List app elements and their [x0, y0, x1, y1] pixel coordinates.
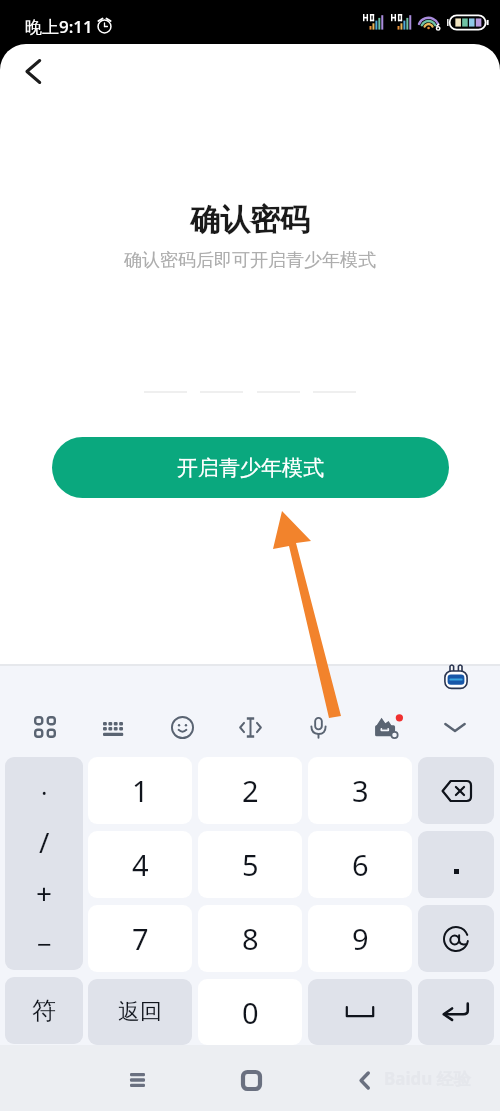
- staticText: 4: [132, 845, 149, 884]
- staticText: /: [39, 823, 50, 861]
- button[interactable]: Back: [10, 48, 56, 94]
- button[interactable]: Home: [227, 1056, 275, 1104]
- button[interactable]: [418, 979, 494, 1045]
- staticText: −: [37, 926, 52, 961]
- button[interactable]: 符: [5, 977, 83, 1044]
- staticText: 3: [352, 771, 369, 810]
- staticText: ·: [41, 776, 48, 809]
- button[interactable]: Emoji: [159, 704, 205, 750]
- staticText: +: [36, 874, 53, 912]
- button[interactable]: [308, 979, 412, 1045]
- staticText: 确认密码后即可开启青少年模式: [0, 249, 500, 272]
- button[interactable]: ·: [5, 757, 83, 970]
- button[interactable]: [144, 347, 187, 393]
- button[interactable]: Hide keyboard: [432, 704, 478, 750]
- button[interactable]: [200, 347, 243, 393]
- staticText: 晚上9:11: [25, 15, 93, 38]
- button[interactable]: 返回: [88, 979, 192, 1045]
- button[interactable]: Keyboard layout: [91, 704, 137, 750]
- button[interactable]: 9: [308, 905, 412, 972]
- button[interactable]: [418, 831, 494, 898]
- staticText: 符: [32, 996, 56, 1026]
- button[interactable]: 6: [308, 831, 412, 898]
- button[interactable]: Back: [340, 1056, 388, 1104]
- staticText: 7: [132, 919, 149, 958]
- button[interactable]: [257, 347, 300, 393]
- staticText: 9: [352, 919, 369, 958]
- staticText: 2: [242, 771, 259, 810]
- button[interactable]: [313, 347, 356, 393]
- staticText: 5: [242, 845, 259, 884]
- staticText: 0: [242, 993, 259, 1032]
- button[interactable]: 开启青少年模式: [52, 437, 449, 498]
- staticText: 6: [352, 845, 369, 884]
- button[interactable]: 7: [88, 905, 192, 972]
- button[interactable]: 3: [308, 757, 412, 824]
- button[interactable]: 8: [198, 905, 302, 972]
- button[interactable]: 1: [88, 757, 192, 824]
- staticText: 确认密码: [0, 201, 500, 239]
- button[interactable]: Apps: [22, 704, 68, 750]
- staticText: 1: [132, 771, 149, 810]
- button[interactable]: Clipboard: [364, 704, 410, 750]
- button[interactable]: 2: [198, 757, 302, 824]
- button[interactable]: [418, 905, 494, 972]
- button[interactable]: [418, 757, 494, 824]
- staticText: 返回: [118, 998, 162, 1026]
- staticText: 8: [242, 919, 259, 958]
- button[interactable]: 0: [198, 979, 302, 1045]
- button[interactable]: Voice input: [295, 704, 341, 750]
- staticText: 开启青少年模式: [177, 455, 324, 481]
- button[interactable]: Recent apps: [113, 1056, 161, 1104]
- button[interactable]: 5: [198, 831, 302, 898]
- staticText: Baidu 经验: [384, 1067, 471, 1090]
- button[interactable]: 4: [88, 831, 192, 898]
- button[interactable]: Move cursor: [227, 704, 273, 750]
